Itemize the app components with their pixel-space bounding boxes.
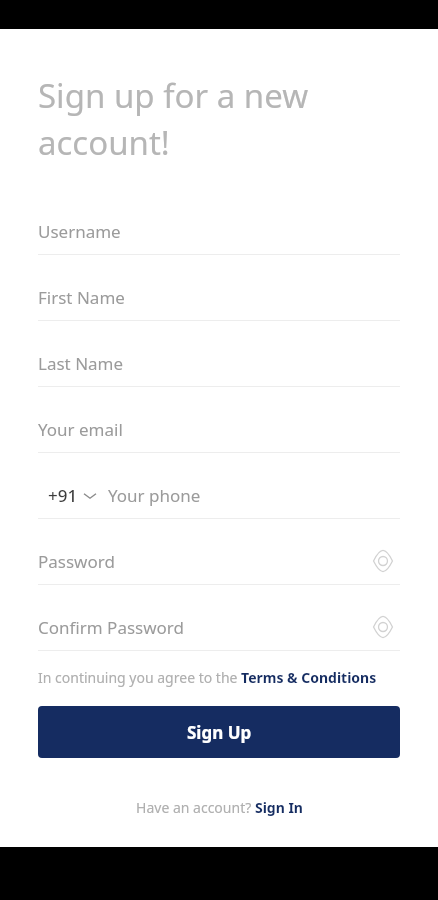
button[interactable]: Have an account? Sign In	[136, 798, 303, 817]
button[interactable]: +91	[38, 472, 400, 519]
button[interactable]: In continuing you agree to the Terms & C…	[38, 668, 377, 687]
staticText: First Name	[38, 286, 125, 309]
staticText: Username	[38, 220, 121, 243]
staticText: Sign up for a new account!	[38, 73, 400, 165]
button[interactable]: Sign Up	[38, 706, 400, 758]
button[interactable]: Your email	[38, 406, 400, 453]
button[interactable]: Show password	[366, 544, 400, 578]
staticText: Confirm Password	[38, 616, 184, 639]
button[interactable]: Password	[38, 538, 400, 585]
button[interactable]: Last Name	[38, 340, 400, 387]
button[interactable]: Username	[38, 208, 400, 255]
staticText: Your phone	[108, 484, 201, 507]
button[interactable]: Show password	[366, 610, 400, 644]
staticText: Password	[38, 550, 115, 573]
staticText: +91	[48, 484, 78, 507]
staticText: Sign Up	[187, 721, 252, 744]
staticText: Your email	[38, 418, 123, 441]
button[interactable]: First Name	[38, 274, 400, 321]
staticText: Last Name	[38, 352, 124, 375]
button[interactable]: Confirm Password	[38, 604, 400, 651]
